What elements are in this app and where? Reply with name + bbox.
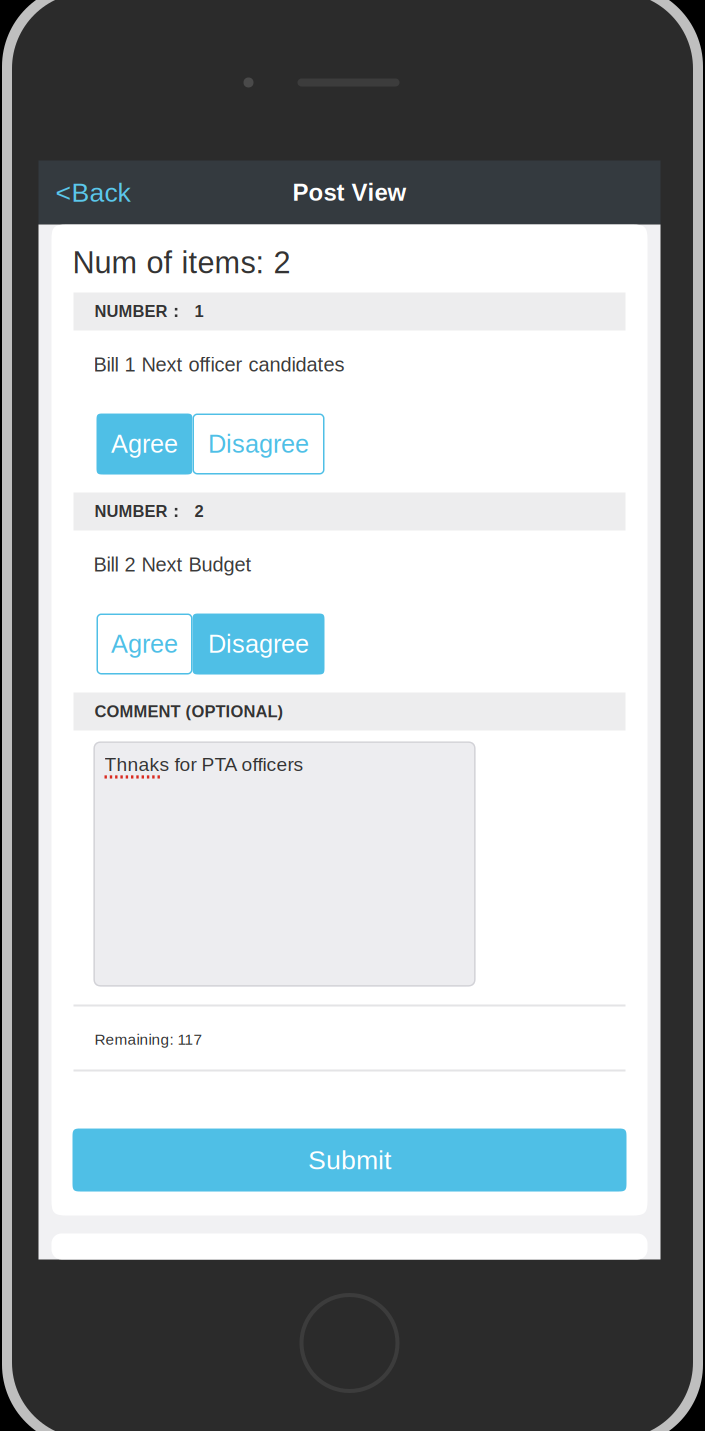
staticText: Disagree: [208, 430, 309, 458]
staticText: Num of items: 2: [72, 245, 290, 280]
button[interactable]: Disagree: [192, 613, 324, 674]
button[interactable]: <Back: [38, 168, 130, 217]
staticText: <Back: [55, 178, 130, 207]
staticText: NUMBER： 1: [94, 301, 203, 322]
staticText: Bill 1 Next officer candidates: [93, 353, 344, 376]
button[interactable]: Agree: [96, 613, 192, 674]
staticText: Thnaks for PTA officers: [104, 753, 303, 775]
button[interactable]: Disagree: [192, 413, 324, 474]
staticText: Submit: [308, 1145, 391, 1175]
staticText: Agree: [111, 430, 178, 458]
staticText: Disagree: [208, 630, 309, 658]
staticText: Agree: [111, 630, 178, 658]
staticText: Post View: [292, 179, 406, 206]
staticText: COMMENT (OPTIONAL): [94, 702, 283, 721]
staticText: Remaining: 117: [94, 1031, 202, 1048]
staticText: NUMBER： 2: [94, 501, 203, 522]
button[interactable]: Submit: [72, 1128, 626, 1191]
button[interactable]: Agree: [96, 413, 192, 474]
staticText: Bill 2 Next Budget: [93, 553, 251, 576]
